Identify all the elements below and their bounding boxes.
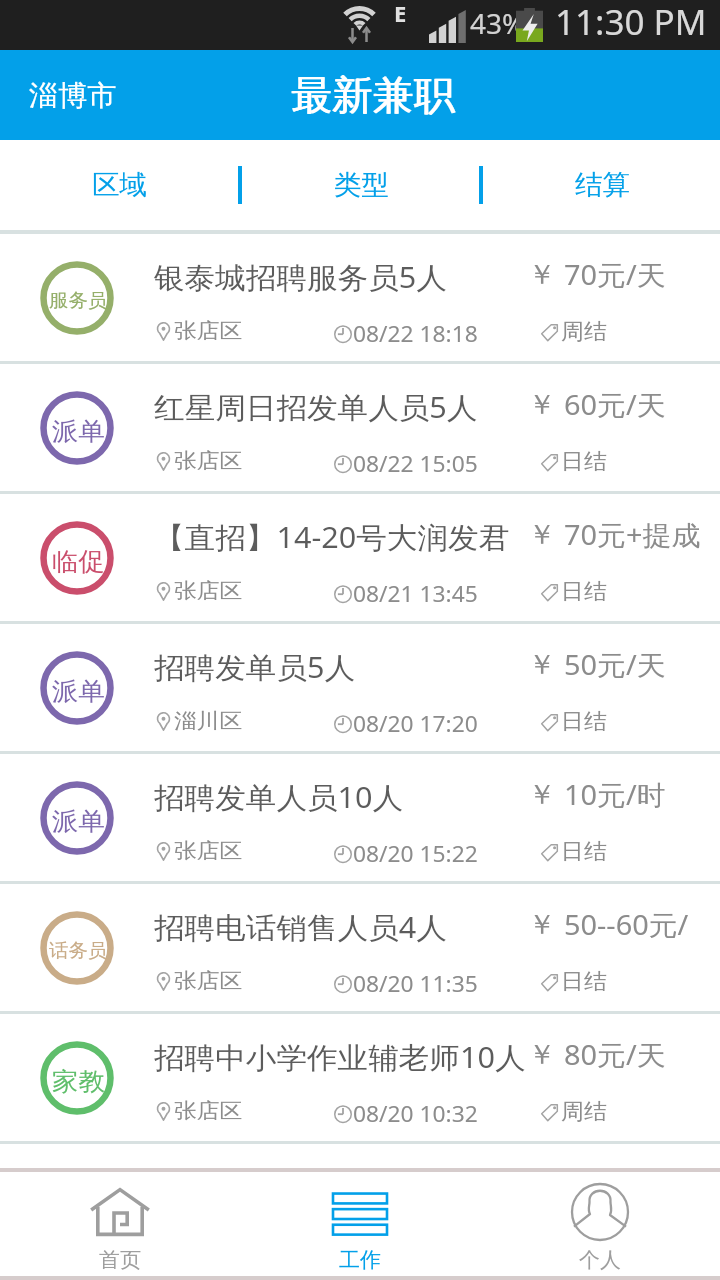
staticText: 派单 <box>52 806 105 837</box>
staticText: ￥ <box>528 517 556 552</box>
staticText: 43% <box>470 4 526 42</box>
staticText: 派单 <box>52 676 105 707</box>
button[interactable]: 派单 <box>0 624 720 751</box>
staticText: 家教 <box>52 1066 105 1097</box>
staticText: 张店区 <box>174 968 242 994</box>
button[interactable]: 派单 <box>0 364 720 491</box>
staticText: 张店区 <box>174 1098 242 1124</box>
staticText: ￥ <box>528 777 556 812</box>
staticText: 08/20 11:35 <box>353 968 478 998</box>
button[interactable]: 区域 <box>0 140 238 230</box>
staticText: 淄川区 <box>174 708 242 734</box>
staticText: 08/22 18:18 <box>353 318 478 348</box>
staticText: 日结 <box>561 448 607 476</box>
staticText: 08/20 10:32 <box>353 1098 478 1128</box>
staticText: 张店区 <box>174 578 242 604</box>
button[interactable]: Jobs <box>240 1172 480 1276</box>
staticText: 工作 <box>339 1247 381 1273</box>
staticText: 区域 <box>92 168 147 202</box>
staticText: ￥ <box>528 387 556 422</box>
staticText: 周结 <box>561 1098 607 1126</box>
staticText: 招聘中小学作业辅老师10人 <box>154 1037 526 1077</box>
staticText: 60元/天 <box>564 386 666 423</box>
staticText: 10元/时 <box>564 776 666 813</box>
staticText: 08/22 15:05 <box>353 448 478 478</box>
staticText: 日结 <box>561 968 607 996</box>
staticText: 银泰城招聘服务员5人 <box>154 257 447 297</box>
button[interactable]: 临促 <box>0 494 720 621</box>
staticText: 红星周日招发单人员5人 <box>154 387 478 427</box>
staticText: 50元/天 <box>564 646 666 683</box>
staticText: 日结 <box>561 708 607 736</box>
staticText: 张店区 <box>174 448 242 474</box>
button[interactable]: 派单 <box>0 754 720 881</box>
staticText: 招聘发单员5人 <box>154 647 355 687</box>
staticText: 11:30 PM <box>555 0 707 46</box>
staticText: 首页 <box>99 1247 141 1273</box>
staticText: E <box>394 0 407 28</box>
button[interactable]: 家教 <box>0 1014 720 1141</box>
staticText: 招聘发单人员10人 <box>154 777 404 817</box>
staticText: 淄博市 <box>29 78 116 113</box>
staticText: ￥ <box>528 647 556 682</box>
staticText: 类型 <box>334 168 389 202</box>
button[interactable]: 类型 <box>242 140 479 230</box>
staticText: 话务员 <box>49 939 107 963</box>
staticText: 派单 <box>52 416 105 447</box>
button[interactable]: 淄博市 <box>0 66 133 125</box>
staticText: 最新兼职 <box>291 70 454 120</box>
staticText: ￥ <box>528 1037 556 1072</box>
staticText: ￥ <box>528 257 556 292</box>
button[interactable]: 服务员 <box>0 234 720 361</box>
staticText: 张店区 <box>174 838 242 864</box>
button[interactable]: 话务员 <box>0 884 720 1011</box>
staticText: 80元/天 <box>564 1036 666 1073</box>
staticText: 08/20 17:20 <box>353 708 478 738</box>
staticText: 50--60元/ <box>564 906 689 943</box>
staticText: 【直招】14-20号大润发君 <box>154 517 509 557</box>
staticText: 日结 <box>561 838 607 866</box>
staticText: 日结 <box>561 578 607 606</box>
staticText: 周结 <box>561 318 607 346</box>
staticText: 服务员 <box>49 289 107 313</box>
staticText: 临促 <box>52 546 105 577</box>
staticText: 招聘电话销售人员4人 <box>154 907 447 947</box>
button[interactable]: Profile <box>480 1172 720 1276</box>
staticText: 个人 <box>579 1247 621 1273</box>
staticText: 结算 <box>575 168 630 202</box>
button[interactable]: Home <box>0 1172 240 1276</box>
staticText: ￥ <box>528 907 556 942</box>
button[interactable]: 结算 <box>483 140 720 230</box>
staticText: 70元/天 <box>564 256 666 293</box>
staticText: 70元+提成 <box>564 516 701 553</box>
staticText: 08/20 15:22 <box>353 838 478 868</box>
staticText: 最新兼职 <box>292 70 455 120</box>
staticText: 张店区 <box>174 318 242 344</box>
staticText: 08/21 13:45 <box>353 578 478 608</box>
